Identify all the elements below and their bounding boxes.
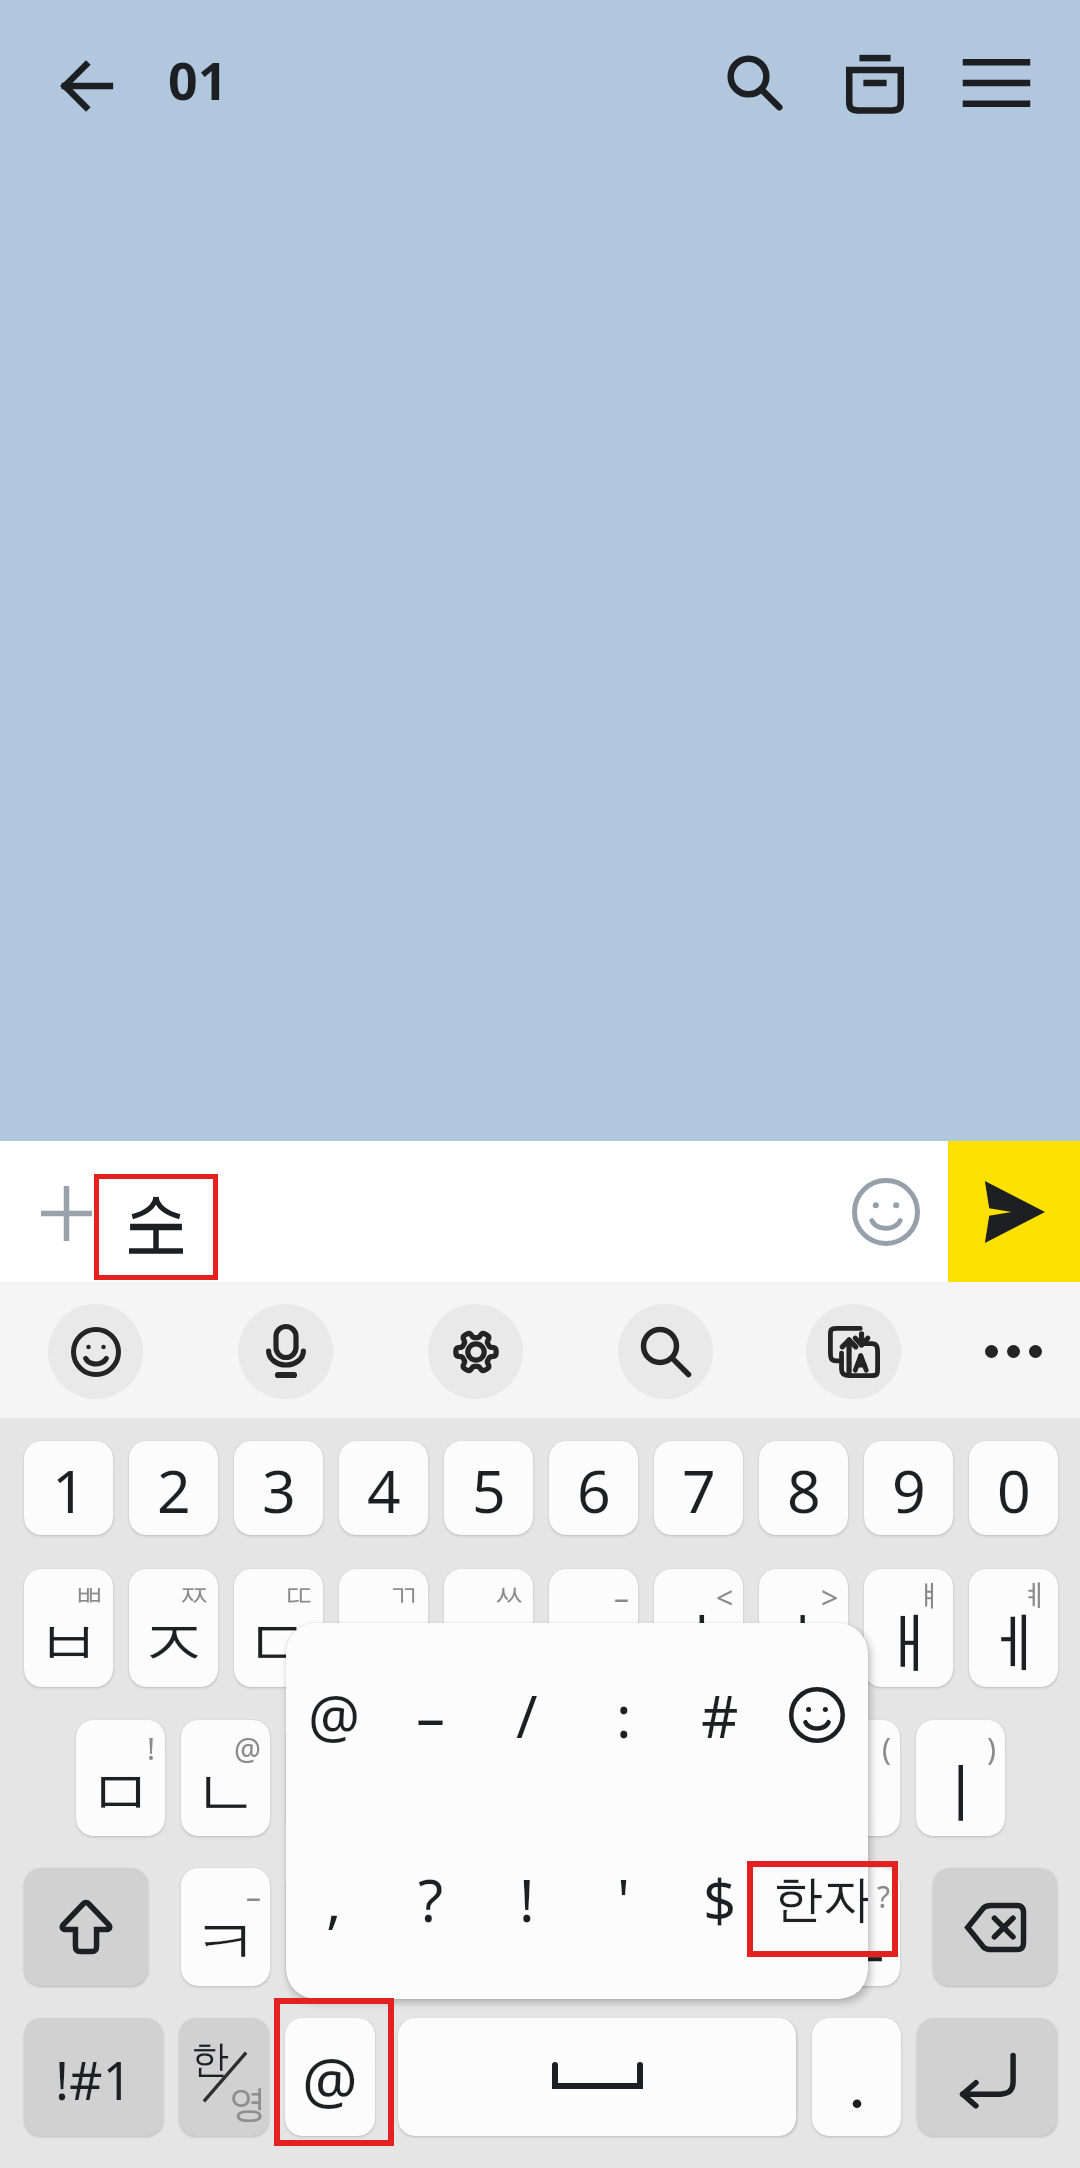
button[interactable]: Emoji — [48, 1304, 143, 1399]
button[interactable]: 8 — [759, 1441, 848, 1535]
button[interactable]: Search — [618, 1304, 713, 1399]
button[interactable]: – — [181, 1868, 270, 1986]
staticText: < — [716, 1577, 734, 1618]
button[interactable]: ㅉ — [129, 1569, 218, 1687]
button[interactable]: 3 — [234, 1441, 323, 1535]
button[interactable]: ) — [916, 1720, 1005, 1836]
button[interactable]: ; — [601, 1868, 690, 1986]
button[interactable]: & — [706, 1720, 795, 1836]
button[interactable]: Enter — [917, 2018, 1057, 2136]
button[interactable]: Emoji — [830, 1141, 942, 1282]
button[interactable]: / — [479, 1667, 575, 1763]
staticText: ㅒ — [914, 1577, 944, 1615]
staticText: ! — [519, 1860, 535, 1939]
button[interactable]: ? — [811, 1868, 900, 1986]
button[interactable]: Emoticon — [769, 1667, 865, 1763]
button[interactable]: Add attachment — [11, 1158, 121, 1268]
button[interactable]: @ — [286, 1667, 382, 1763]
button[interactable]: Symbols — [24, 2018, 163, 2136]
button[interactable]: 7 — [654, 1441, 743, 1535]
button[interactable]: ㅆ — [444, 1569, 533, 1687]
staticText: ㅖ — [1019, 1577, 1049, 1615]
staticText: ㅂ — [36, 1602, 102, 1685]
button[interactable]: – — [549, 1569, 638, 1687]
button[interactable]: @ — [285, 2018, 375, 2136]
button[interactable] — [812, 2018, 901, 2136]
button[interactable]: 2 — [129, 1441, 218, 1535]
button[interactable]: 한자 — [751, 1851, 868, 1947]
staticText: ㄷ — [246, 1602, 312, 1685]
button[interactable]: $ — [391, 1720, 480, 1836]
button[interactable]: : — [706, 1868, 795, 1986]
staticText: – — [246, 1876, 261, 1917]
staticText: – — [614, 1577, 629, 1618]
button[interactable]: Voice input — [238, 1304, 333, 1399]
button[interactable]: ! — [479, 1851, 575, 1947]
button[interactable]: ㄲ — [339, 1569, 428, 1687]
staticText: ㅡ — [823, 1901, 889, 1984]
button[interactable]: 5 — [444, 1441, 533, 1535]
staticText: 한자 — [773, 1868, 868, 1931]
button[interactable]: ' — [576, 1851, 672, 1947]
button[interactable]: ㅒ — [864, 1569, 953, 1687]
button[interactable]: Send — [948, 1141, 1080, 1282]
staticText: ' — [617, 1860, 631, 1939]
button[interactable]: 4 — [339, 1441, 428, 1535]
button[interactable]: $ — [672, 1851, 768, 1947]
button[interactable]: Back — [31, 31, 141, 141]
button[interactable]: @ — [181, 1720, 270, 1836]
staticText: : — [777, 1876, 786, 1917]
staticText: ( — [882, 1728, 891, 1769]
button[interactable]: , — [286, 1851, 382, 1947]
button[interactable]: Translate — [806, 1304, 901, 1399]
button[interactable]: ! — [76, 1720, 165, 1836]
button[interactable]: Backspace — [933, 1868, 1057, 1986]
button[interactable]: # — [286, 1720, 375, 1836]
button[interactable]: ㄸ — [234, 1569, 323, 1687]
staticText: > — [821, 1577, 839, 1618]
button[interactable]: / — [496, 1868, 585, 1986]
button[interactable]: 9 — [864, 1441, 953, 1535]
button[interactable]: 1 — [24, 1441, 113, 1535]
staticText: ? — [877, 1876, 891, 1917]
button[interactable]: 0 — [969, 1441, 1058, 1535]
button[interactable] — [398, 2018, 796, 2136]
button[interactable]: – — [383, 1667, 479, 1763]
staticText: 1 — [52, 1450, 86, 1530]
button[interactable]: Archive — [820, 28, 930, 138]
button[interactable]: < — [654, 1569, 743, 1687]
button[interactable]: ? — [383, 1851, 479, 1947]
button[interactable]: More options — [966, 1304, 1060, 1398]
button[interactable]: ^ — [601, 1720, 690, 1836]
button[interactable]: 6 — [549, 1441, 638, 1535]
button[interactable]: > — [759, 1569, 848, 1687]
staticText: 01 — [168, 44, 228, 115]
staticText: # — [701, 1676, 739, 1755]
staticText: ㅐ — [876, 1602, 942, 1685]
button[interactable]: Menu — [941, 28, 1051, 138]
staticText: / — [516, 1676, 538, 1755]
button[interactable]: = — [391, 1868, 480, 1986]
button[interactable]: : — [576, 1667, 672, 1763]
staticText: ) — [987, 1728, 996, 1769]
button[interactable]: ( — [811, 1720, 900, 1836]
button[interactable]: # — [672, 1667, 768, 1763]
button[interactable]: ㅃ — [24, 1569, 113, 1687]
staticText: ㅋ — [193, 1901, 259, 1984]
button[interactable]: Settings — [428, 1304, 523, 1399]
button[interactable]: % — [496, 1720, 585, 1836]
button[interactable]: Shift — [24, 1868, 148, 1986]
button[interactable]: Language — [179, 2018, 269, 2136]
button[interactable]: ㅖ — [969, 1569, 1058, 1687]
staticText: ㅊ — [403, 1901, 469, 1984]
button[interactable]: Search — [700, 28, 810, 138]
button[interactable]: + — [286, 1868, 375, 1986]
staticText: ㅔ — [981, 1602, 1047, 1685]
